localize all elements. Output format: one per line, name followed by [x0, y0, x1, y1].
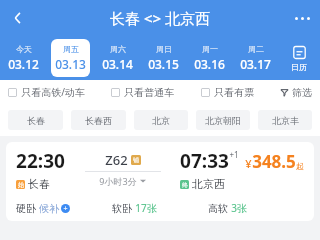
- staticText: 长春: [27, 115, 45, 126]
- staticText: 长春 <> 北京西: [110, 8, 210, 28]
- staticText: 北京朝阳: [205, 115, 241, 126]
- staticText: +: [63, 204, 68, 213]
- button[interactable]: 周一: [190, 39, 228, 77]
- staticText: 03.14: [102, 56, 133, 72]
- staticText: 22:30: [16, 148, 65, 174]
- button[interactable]: Calendar: [278, 36, 320, 80]
- button[interactable]: 北京丰: [258, 110, 312, 130]
- button[interactable]: More options: [284, 0, 320, 36]
- staticText: 只看高铁/动车: [21, 85, 85, 99]
- staticText: 只看普通车: [124, 86, 174, 99]
- staticText: 今天: [16, 44, 32, 54]
- staticText: 筛选: [292, 86, 312, 99]
- button[interactable]: 22:30: [6, 142, 314, 221]
- button[interactable]: 北京朝阳: [196, 110, 250, 130]
- staticText: 周二: [248, 44, 264, 54]
- staticText: 硬卧: [16, 202, 36, 215]
- staticText: ¥: [245, 156, 252, 171]
- button[interactable]: Back: [0, 0, 36, 36]
- staticText: 07:33: [180, 148, 229, 174]
- button[interactable]: 长春西: [71, 110, 126, 130]
- staticText: 始: [18, 181, 24, 189]
- button[interactable]: 今天: [4, 39, 43, 77]
- staticText: 周日: [156, 44, 172, 54]
- staticText: 软卧: [112, 202, 132, 215]
- button[interactable]: 周五: [51, 39, 90, 77]
- staticText: 北京丰: [272, 115, 299, 126]
- button[interactable]: 筛选: [280, 86, 312, 99]
- staticText: 348.5: [252, 150, 296, 173]
- staticText: 北京西: [192, 177, 225, 191]
- staticText: 03.16: [194, 56, 225, 72]
- staticText: 03.12: [8, 56, 39, 72]
- staticText: 03.13: [55, 56, 86, 72]
- staticText: Z62: [105, 151, 128, 169]
- staticText: 长春: [28, 177, 50, 191]
- staticText: +1: [229, 149, 239, 160]
- button[interactable]: 只看高铁/动车: [8, 85, 85, 99]
- staticText: 起: [296, 161, 304, 171]
- staticText: 只看有票: [214, 86, 254, 99]
- button[interactable]: 周六: [98, 39, 136, 77]
- staticText: 9小时3分: [99, 175, 137, 187]
- button[interactable]: 周日: [144, 39, 182, 77]
- staticText: 终: [182, 181, 188, 189]
- staticText: 长春西: [85, 115, 112, 126]
- staticText: 周五: [63, 44, 79, 54]
- button[interactable]: 周二: [236, 39, 274, 77]
- button[interactable]: 只看普通车: [111, 86, 174, 99]
- staticText: 高软: [208, 202, 228, 215]
- staticText: 周六: [110, 44, 126, 54]
- staticText: 03.17: [240, 56, 271, 72]
- button[interactable]: 长春: [8, 110, 63, 130]
- staticText: 17张: [135, 201, 157, 215]
- button[interactable]: 只看有票: [201, 86, 254, 99]
- staticText: 日历: [291, 62, 307, 72]
- staticText: 候补: [39, 202, 59, 215]
- staticText: 北京: [152, 115, 170, 126]
- staticText: 3张: [231, 201, 247, 215]
- staticText: 铺: [133, 156, 139, 164]
- staticText: 03.15: [148, 56, 179, 72]
- button[interactable]: 北京: [134, 110, 188, 130]
- staticText: 周一: [202, 44, 218, 54]
